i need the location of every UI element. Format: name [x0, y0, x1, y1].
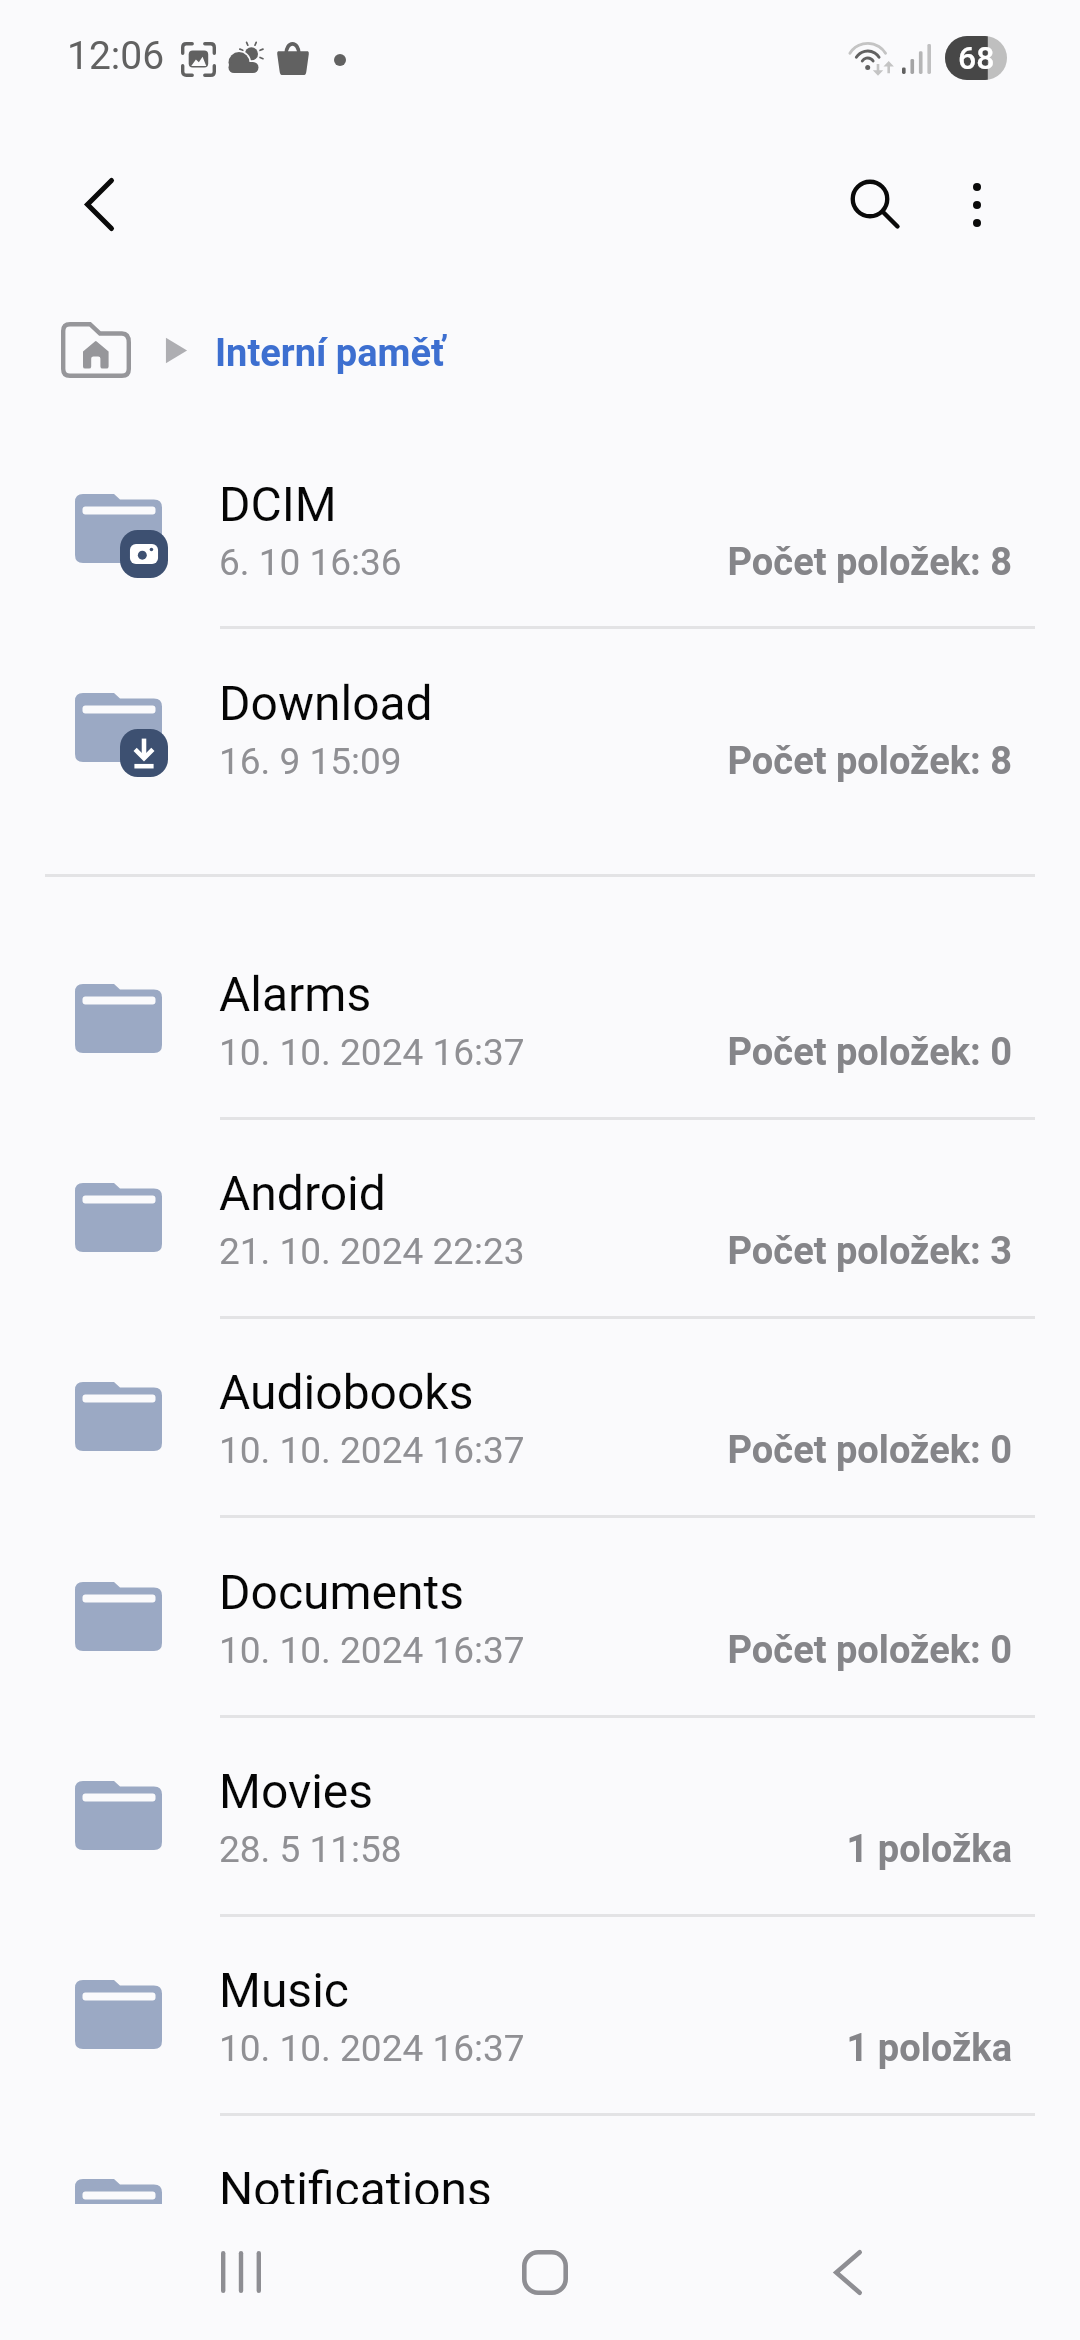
button[interactable]: Download: [0, 639, 1080, 836]
staticText: Počet položek: 8: [612, 540, 1012, 585]
staticText: 68: [958, 39, 995, 77]
staticText: Documents: [219, 1564, 464, 1620]
staticText: Download: [219, 675, 433, 731]
button[interactable]: DCIM: [0, 440, 1080, 637]
staticText: Počet položek: 0: [612, 1030, 1012, 1075]
button[interactable]: More options: [932, 160, 1022, 250]
staticText: 10. 10. 2024 16:37: [219, 2027, 525, 2070]
button[interactable]: Back: [803, 2227, 893, 2317]
staticText: Alarms: [219, 966, 372, 1022]
staticText: 16. 9 15:09: [219, 740, 402, 783]
button[interactable]: Alarms: [0, 930, 1080, 1127]
staticText: Android: [219, 1165, 386, 1221]
staticText: Interní paměť: [215, 331, 445, 376]
staticText: DCIM: [219, 476, 337, 532]
button[interactable]: Android: [0, 1129, 1080, 1326]
staticText: 10. 10. 2024 16:37: [219, 1629, 525, 1672]
button[interactable]: Search: [831, 160, 921, 250]
staticText: 1 položka: [612, 1827, 1012, 1872]
button[interactable]: Audiobooks: [0, 1328, 1080, 1525]
staticText: 10. 10. 2024 16:37: [219, 1429, 525, 1472]
staticText: 6. 10 16:36: [219, 541, 402, 584]
button[interactable]: Movies: [0, 1727, 1080, 1924]
staticText: Počet položek: 8: [612, 739, 1012, 784]
staticText: Music: [219, 1962, 349, 2018]
staticText: Movies: [219, 1763, 374, 1819]
button[interactable]: Music: [0, 1926, 1080, 2123]
button[interactable]: Home: [500, 2227, 590, 2317]
staticText: 10. 10. 2024 16:37: [219, 2226, 525, 2269]
staticText: 21. 10. 2024 22:23: [219, 1230, 525, 1273]
staticText: Počet položek: 0: [612, 1628, 1012, 1673]
staticText: 28. 5 11:58: [219, 1828, 402, 1871]
staticText: 1 položka: [612, 2026, 1012, 2071]
staticText: 10. 10. 2024 16:37: [219, 1031, 525, 1074]
button[interactable]: Notifications: [0, 2125, 1080, 2322]
staticText: Notifications: [219, 2161, 492, 2217]
staticText: Počet položek: 0: [612, 1428, 1012, 1473]
staticText: Počet položek: 0: [612, 2225, 1012, 2270]
staticText: Počet položek: 3: [612, 1229, 1012, 1274]
button[interactable]: Back: [54, 159, 144, 249]
button[interactable]: Interní paměť: [61, 320, 445, 380]
button[interactable]: Recents: [196, 2227, 286, 2317]
button[interactable]: Documents: [0, 1528, 1080, 1725]
staticText: Audiobooks: [219, 1364, 474, 1420]
staticText: 12:06: [67, 33, 165, 79]
